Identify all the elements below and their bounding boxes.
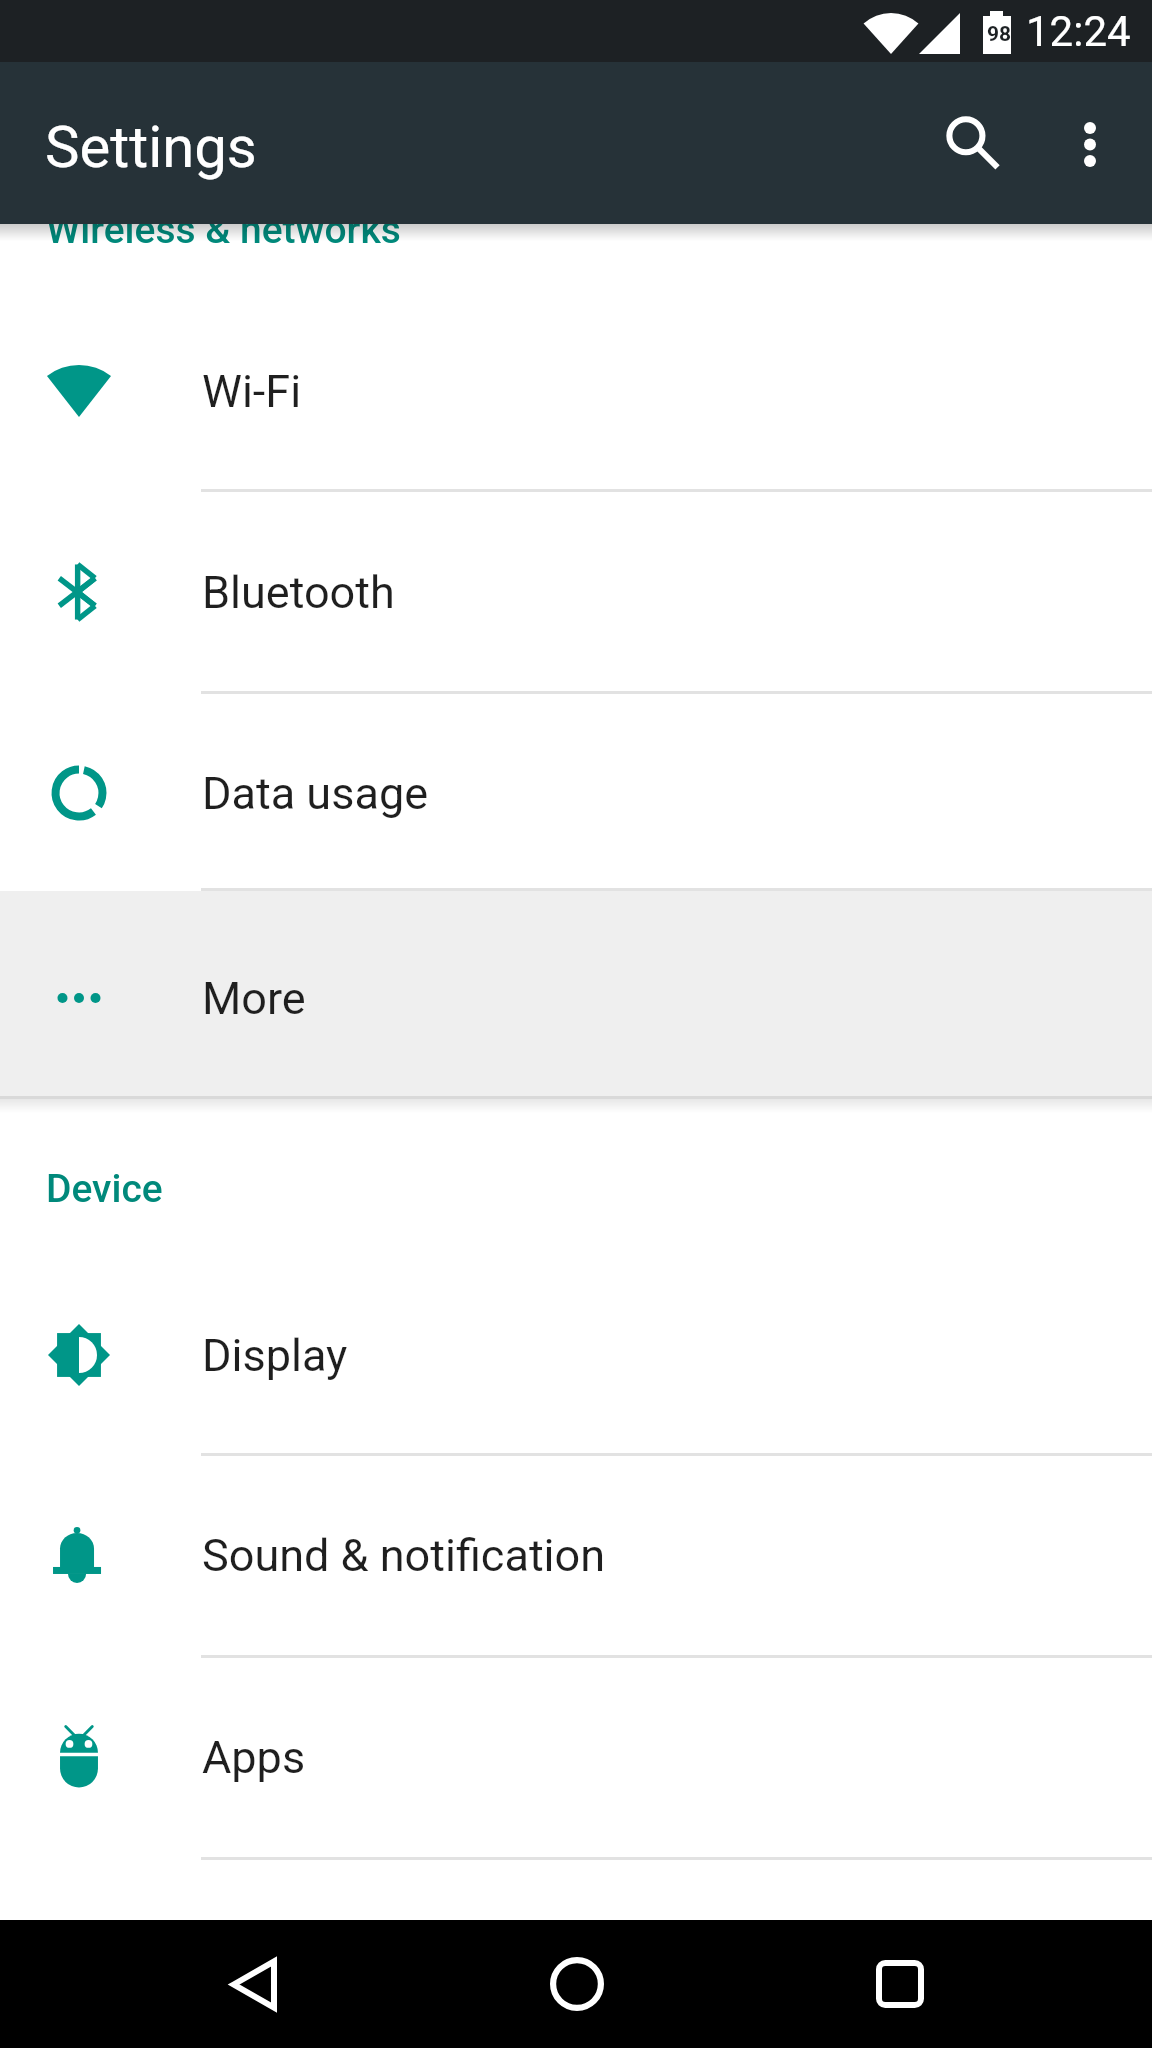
- button[interactable]: Data usage: [0, 692, 1152, 894]
- button[interactable]: Display: [0, 1254, 1152, 1456]
- staticText: Display: [202, 1329, 348, 1382]
- button[interactable]: Home: [513, 1920, 641, 2048]
- staticText: Wi-Fi: [202, 365, 302, 418]
- staticText: Apps: [202, 1731, 306, 1784]
- button[interactable]: Bluetooth: [0, 491, 1152, 693]
- button[interactable]: Apps: [0, 1656, 1152, 1858]
- button[interactable]: Search: [916, 87, 1028, 199]
- staticText: 98: [987, 22, 1012, 47]
- button[interactable]: Sound & notification: [0, 1454, 1152, 1656]
- button[interactable]: More options: [1034, 87, 1146, 199]
- staticText: Bluetooth: [202, 566, 395, 619]
- button[interactable]: Wi-Fi: [0, 290, 1152, 492]
- staticText: More: [202, 972, 306, 1025]
- staticText: Device: [46, 1166, 163, 1212]
- button[interactable]: [0, 891, 1152, 1096]
- staticText: Wireless & networks: [46, 207, 401, 253]
- staticText: Settings: [45, 113, 257, 181]
- button[interactable]: Back: [189, 1920, 317, 2048]
- button[interactable]: More: [0, 897, 1152, 1099]
- staticText: 12:24: [1026, 7, 1131, 56]
- staticText: Data usage: [202, 767, 429, 820]
- button[interactable]: Recent apps: [836, 1920, 964, 2048]
- staticText: Sound & notification: [202, 1529, 606, 1582]
